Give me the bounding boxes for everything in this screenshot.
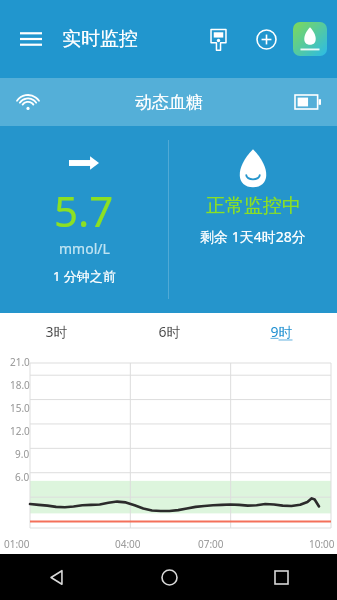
other: Battery: [295, 95, 321, 109]
staticText: 正常监控中: [206, 194, 301, 218]
staticText: 12.0: [10, 424, 30, 438]
staticText: mmol/L: [59, 239, 110, 258]
button[interactable]: Back: [0, 554, 113, 600]
staticText: 6时: [158, 322, 181, 341]
staticText: 1 分钟之前: [53, 267, 116, 285]
staticText: 18.0: [10, 378, 30, 392]
staticText: 9时: [270, 322, 293, 341]
button[interactable]: Add: [247, 20, 285, 58]
button[interactable]: Sensor: [169, 126, 337, 313]
button[interactable]: Recent apps: [225, 554, 337, 600]
staticText: 10:00: [309, 537, 335, 551]
button[interactable]: 9时: [225, 313, 337, 349]
staticText: 5.7: [54, 182, 114, 239]
staticText: 01:00: [4, 537, 30, 551]
button[interactable]: Glucose meter: [199, 20, 237, 58]
staticText: 3时: [45, 322, 68, 341]
staticText: 21.0: [10, 355, 30, 369]
staticText: 剩余 1天4时28分: [200, 227, 306, 246]
button[interactable]: Menu: [14, 22, 48, 56]
other: Sensor: [238, 148, 268, 186]
button[interactable]: Medtrum app: [293, 22, 327, 56]
staticText: 15.0: [10, 401, 30, 415]
button[interactable]: 5.7: [0, 126, 168, 313]
button[interactable]: 6时: [113, 313, 225, 349]
button[interactable]: 3时: [0, 313, 113, 349]
button[interactable]: Home: [113, 554, 225, 600]
staticText: 实时监控: [62, 27, 138, 51]
staticText: 9.0: [15, 447, 30, 461]
staticText: 6.0: [15, 470, 30, 484]
staticText: 动态血糖: [135, 92, 203, 113]
other: Signal: [18, 92, 38, 112]
staticText: 07:00: [198, 537, 224, 551]
staticText: 04:00: [115, 537, 141, 551]
